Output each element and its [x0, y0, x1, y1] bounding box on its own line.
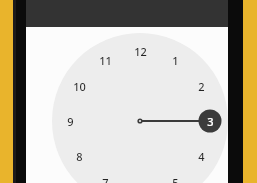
button[interactable]: 5 — [164, 171, 186, 183]
staticText: 5 — [172, 175, 179, 183]
button[interactable]: 2 — [190, 75, 212, 97]
staticText: 7 — [102, 175, 109, 183]
staticText: 4 — [198, 149, 205, 164]
button[interactable]: 9 — [59, 110, 81, 132]
staticText: 2 — [198, 79, 205, 94]
staticText: 1 — [172, 53, 179, 68]
button[interactable]: 8 — [68, 145, 90, 167]
button[interactable]: 12 — [129, 40, 151, 62]
button[interactable]: Clock hour picker — [0, 33, 202, 183]
button[interactable]: 4 — [190, 145, 212, 167]
staticText: 10 — [73, 79, 86, 94]
button[interactable]: 3 — [199, 110, 221, 132]
staticText: 12 — [134, 44, 147, 59]
staticText: 11 — [99, 53, 112, 68]
button[interactable]: 10 — [68, 75, 90, 97]
staticText: 3 — [207, 114, 214, 129]
button[interactable]: 1 — [164, 49, 186, 71]
staticText: 8 — [76, 149, 83, 164]
button[interactable]: 7 — [94, 171, 116, 183]
button[interactable]: 11 — [94, 49, 116, 71]
staticText: 9 — [67, 114, 74, 129]
